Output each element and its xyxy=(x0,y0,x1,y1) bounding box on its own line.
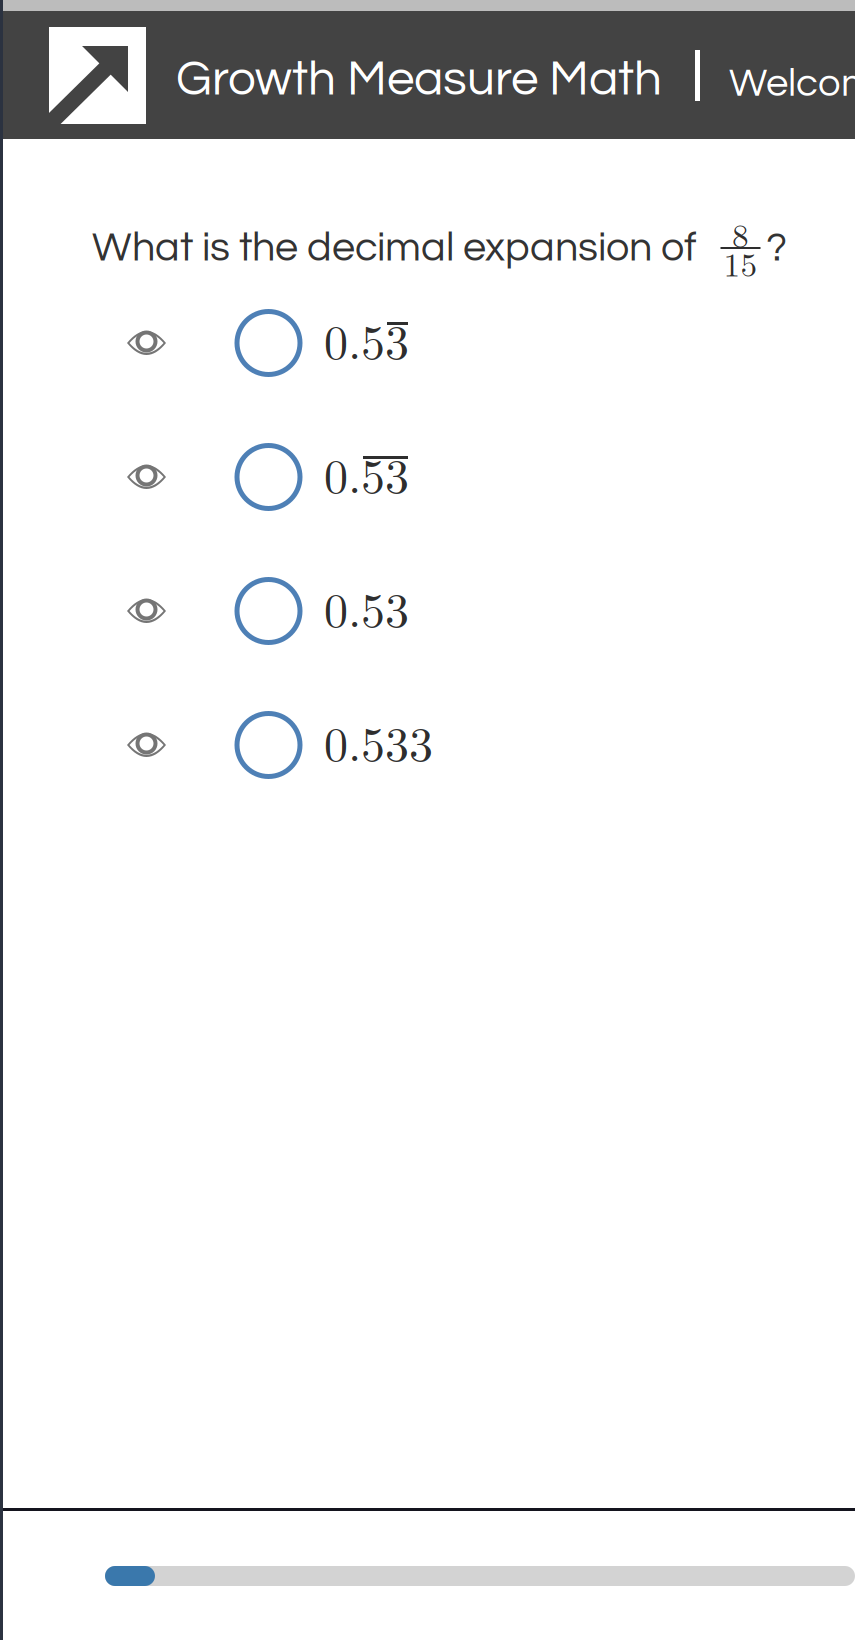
staticText: 0.5 xyxy=(324,305,385,373)
button[interactable]: Growth Measure home xyxy=(49,27,146,124)
staticText: Welcome xyxy=(729,63,855,104)
staticText: 53 xyxy=(361,439,409,507)
staticText: 8 xyxy=(732,210,749,257)
button[interactable]: 0. xyxy=(0,422,855,532)
staticText: What is the decimal expansion of xyxy=(92,227,697,269)
staticText: 0.53 xyxy=(324,573,409,641)
button[interactable]: 0.5 xyxy=(0,288,855,398)
staticText: 0.533 xyxy=(324,707,433,775)
staticText: 0. xyxy=(324,439,361,507)
staticText: 15 xyxy=(723,239,757,286)
button[interactable]: 0.533 xyxy=(0,690,855,800)
staticText: Growth Measure Math xyxy=(176,54,662,105)
staticText: 3 xyxy=(385,305,409,373)
staticText: ? xyxy=(766,227,787,269)
button[interactable]: 0.53 xyxy=(0,556,855,666)
